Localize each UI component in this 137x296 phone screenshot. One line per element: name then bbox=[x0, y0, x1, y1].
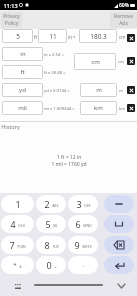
staticText: ft bbox=[20, 68, 25, 76]
button[interactable]: 6 bbox=[68, 215, 98, 233]
staticText: yd bbox=[19, 86, 26, 94]
staticText: MNO bbox=[83, 223, 92, 228]
button[interactable]: 1 bbox=[1, 195, 34, 213]
button[interactable]: Clear bbox=[127, 57, 135, 65]
button[interactable]: in bbox=[2, 47, 43, 61]
button[interactable]: 5 bbox=[2, 29, 33, 43]
staticText: 180.3 bbox=[90, 32, 107, 41]
staticText: km bbox=[94, 104, 103, 112]
staticText: 5 bbox=[45, 218, 51, 230]
button[interactable]: 4 bbox=[1, 215, 34, 233]
staticText: Privacy Policy bbox=[3, 13, 20, 27]
staticText: 1 ft = 12 in 1 mil = 1760 yd bbox=[51, 154, 87, 167]
staticText: # bbox=[19, 264, 22, 269]
staticText: m bbox=[96, 86, 102, 94]
button[interactable]: 5 bbox=[36, 215, 66, 233]
staticText: km bbox=[119, 106, 127, 112]
staticText: yd x 0.9144 = bbox=[44, 88, 80, 94]
button[interactable]: Switch keyboard bbox=[13, 281, 23, 291]
button[interactable]: 9 bbox=[68, 236, 98, 254]
button[interactable]: mil bbox=[2, 101, 43, 115]
staticText: mil bbox=[18, 104, 27, 112]
button[interactable]: 3 bbox=[68, 195, 98, 213]
button[interactable]: Privacy Policy bbox=[1, 12, 22, 28]
button[interactable]: . bbox=[68, 256, 98, 274]
staticText: 4 bbox=[10, 218, 16, 230]
button[interactable]: m bbox=[80, 83, 117, 97]
staticText: 11:13 bbox=[3, 2, 18, 9]
button[interactable]: cm bbox=[74, 53, 116, 70]
staticText: + bbox=[54, 264, 57, 269]
button[interactable]: * bbox=[1, 256, 34, 274]
button[interactable]: Space bbox=[104, 215, 134, 233]
button[interactable]: Clear bbox=[127, 86, 135, 94]
staticText: ABC bbox=[52, 203, 59, 208]
staticText: WXYZ bbox=[82, 244, 92, 249]
staticText: TUV bbox=[52, 244, 59, 249]
staticText: cm bbox=[119, 34, 127, 40]
button[interactable]: 7 bbox=[1, 236, 34, 254]
button[interactable]: Enter bbox=[104, 256, 134, 274]
staticText: PQRS bbox=[17, 244, 26, 249]
staticText: * bbox=[13, 261, 17, 269]
staticText: Remove Ads bbox=[114, 13, 133, 27]
button[interactable]: Hide keyboard bbox=[115, 280, 127, 292]
button[interactable]: Remove Ads bbox=[110, 12, 137, 28]
staticText: GHI bbox=[18, 223, 25, 228]
staticText: 8 bbox=[44, 239, 50, 251]
staticText: 6 bbox=[75, 218, 81, 230]
button[interactable]: yd bbox=[2, 83, 43, 97]
button[interactable]: Clear bbox=[127, 34, 135, 42]
button[interactable]: Clear bbox=[127, 104, 135, 112]
staticText: in bbox=[20, 50, 26, 58]
button[interactable]: 0 bbox=[36, 256, 66, 274]
staticText: 9 bbox=[74, 239, 80, 251]
button[interactable]: Minus bbox=[104, 195, 134, 213]
button[interactable]: ft bbox=[2, 65, 43, 79]
staticText: 11 bbox=[49, 32, 57, 41]
staticText: 3 bbox=[76, 198, 82, 210]
staticText: 60% bbox=[119, 2, 129, 9]
staticText: ft bbox=[34, 34, 39, 40]
button[interactable]: km bbox=[80, 101, 117, 115]
staticText: . bbox=[82, 261, 84, 269]
button[interactable]: 11 bbox=[38, 29, 67, 43]
button[interactable]: Backspace bbox=[104, 236, 134, 254]
staticText: DEF bbox=[84, 203, 91, 208]
staticText: in = bbox=[68, 34, 78, 40]
button[interactable]: 2 bbox=[36, 195, 66, 213]
staticText: ft x 30.48 = bbox=[44, 70, 80, 76]
button[interactable]: 8 bbox=[36, 236, 66, 254]
button[interactable]: 180.3 bbox=[79, 29, 117, 43]
staticText: m bbox=[119, 88, 127, 94]
staticText: 1 bbox=[15, 198, 21, 210]
staticText: 0 bbox=[46, 259, 52, 271]
staticText: cm bbox=[91, 58, 100, 66]
staticText: in x 2.54 = bbox=[44, 52, 80, 58]
staticText: cm bbox=[118, 59, 127, 65]
staticText: 7 bbox=[9, 239, 15, 251]
staticText: mi x 1.609344 = bbox=[44, 106, 80, 112]
staticText: JKL bbox=[53, 223, 58, 228]
staticText: 5 bbox=[16, 32, 20, 41]
staticText: 2 bbox=[44, 198, 50, 210]
staticText: History bbox=[1, 123, 20, 130]
